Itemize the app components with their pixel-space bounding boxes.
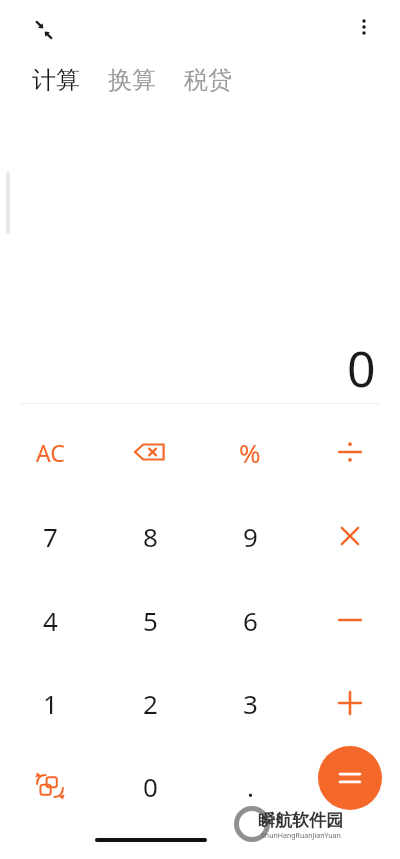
staticText: 5: [143, 603, 158, 638]
button[interactable]: 3: [200, 661, 300, 745]
staticText: ShunHangRuanJianYuan: [261, 831, 341, 841]
staticText: 0: [143, 769, 158, 804]
button[interactable]: AC: [0, 410, 100, 494]
button[interactable]: 9: [200, 494, 300, 578]
staticText: .: [247, 769, 254, 804]
button[interactable]: 税贷: [182, 60, 234, 100]
staticText: %: [239, 435, 261, 470]
staticText: 2: [143, 686, 158, 721]
button[interactable]: Unit converter: [0, 744, 100, 828]
staticText: 1: [43, 686, 58, 721]
button[interactable]: Plus: [300, 661, 400, 745]
button[interactable]: Multiply: [300, 494, 400, 578]
button[interactable]: 0: [100, 744, 200, 828]
staticText: 换算: [108, 65, 156, 95]
button[interactable]: 5: [100, 578, 200, 662]
button[interactable]: 8: [100, 494, 200, 578]
button[interactable]: .: [200, 744, 300, 828]
button[interactable]: 1: [0, 661, 100, 745]
button[interactable]: Minus: [300, 578, 400, 662]
button[interactable]: More options: [345, 8, 383, 46]
button[interactable]: Collapse: [24, 10, 64, 50]
staticText: 计算: [32, 65, 80, 95]
staticText: 3: [243, 686, 258, 721]
staticText: 6: [243, 603, 258, 638]
button[interactable]: Backspace: [100, 410, 200, 494]
staticText: 0: [347, 334, 376, 398]
staticText: 8: [143, 519, 158, 554]
staticText: 税贷: [184, 65, 232, 95]
staticText: 7: [43, 519, 58, 554]
button[interactable]: 6: [200, 578, 300, 662]
button[interactable]: Divide: [300, 410, 400, 494]
button[interactable]: 计算: [30, 60, 82, 100]
button[interactable]: 2: [100, 661, 200, 745]
button[interactable]: 7: [0, 494, 100, 578]
button[interactable]: 4: [0, 578, 100, 662]
staticText: 9: [243, 519, 258, 554]
staticText: AC: [36, 437, 65, 468]
button[interactable]: 换算: [106, 60, 158, 100]
button[interactable]: Equals: [318, 746, 382, 810]
button[interactable]: %: [200, 410, 300, 494]
staticText: 瞬航软件园: [258, 810, 343, 831]
staticText: 4: [43, 603, 58, 638]
